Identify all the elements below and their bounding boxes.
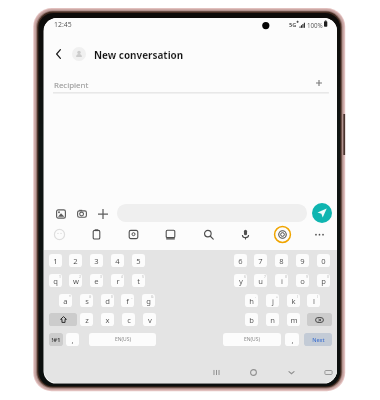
staticText: 5	[142, 274, 144, 279]
button[interactable]: Settings	[273, 225, 291, 243]
button[interactable]: Recents	[207, 363, 225, 381]
button[interactable]: 5	[132, 274, 145, 287]
button[interactable]: b	[245, 313, 258, 326]
button[interactable]: _	[121, 294, 134, 307]
button[interactable]: !#1	[49, 333, 63, 346]
button[interactable]: m	[287, 313, 300, 326]
button[interactable]: 7	[254, 254, 267, 267]
button[interactable]: n	[266, 313, 279, 326]
button[interactable]: Clipboard	[87, 225, 105, 243]
staticText: #	[89, 294, 92, 299]
button[interactable]: (	[287, 294, 300, 307]
button[interactable]: Back	[282, 363, 300, 381]
staticText: 9	[306, 274, 308, 279]
button[interactable]: Add recipient	[310, 74, 328, 92]
button[interactable]: Attach image	[52, 205, 70, 223]
button[interactable]: EN(US)	[89, 333, 156, 346]
staticText: y	[239, 276, 243, 286]
staticText: j	[272, 296, 274, 306]
button[interactable]: 8	[275, 274, 288, 287]
staticText: &	[151, 294, 154, 299]
staticText: x	[105, 315, 110, 325]
staticText: 2	[73, 256, 78, 266]
staticText: -	[255, 294, 257, 299]
button[interactable]: ,	[66, 333, 79, 346]
button[interactable]: GIF	[161, 225, 179, 243]
button[interactable]: Back	[48, 44, 68, 64]
button[interactable]: 5	[132, 254, 145, 267]
button[interactable]: 6	[234, 274, 247, 287]
staticText: b	[249, 315, 254, 325]
button[interactable]: Backspace	[307, 313, 332, 326]
button[interactable]: More attachments	[94, 205, 112, 223]
button[interactable]: Contact avatar	[72, 47, 86, 61]
button[interactable]: 3	[90, 254, 103, 267]
staticText: u	[258, 276, 263, 286]
button[interactable]: Home	[244, 363, 262, 381]
staticText: 4	[121, 274, 123, 279]
staticText: i	[281, 276, 283, 286]
staticText: w	[73, 276, 79, 286]
staticText: +	[276, 294, 278, 299]
staticText: ,	[291, 335, 294, 345]
button[interactable]: 1	[49, 254, 62, 267]
button[interactable]: 6	[234, 254, 247, 267]
staticText: m	[290, 315, 298, 325]
button[interactable]: 4	[111, 254, 124, 267]
button[interactable]: Voice input	[236, 225, 254, 243]
button[interactable]: ,	[285, 333, 299, 346]
button[interactable]: +	[266, 294, 279, 307]
staticText: o	[300, 276, 305, 286]
button[interactable]: EN(US)	[223, 333, 281, 346]
button[interactable]: Search	[199, 225, 217, 243]
button[interactable]: z	[80, 313, 93, 326]
staticText: l	[313, 296, 315, 306]
staticText: 9	[300, 256, 305, 266]
button[interactable]: 0	[317, 254, 330, 267]
button[interactable]: #	[80, 294, 93, 307]
button[interactable]: v	[143, 313, 156, 326]
button[interactable]: 1	[49, 274, 62, 287]
staticText: 8	[279, 256, 284, 266]
button[interactable]: x	[101, 313, 114, 326]
staticText: Recipient	[54, 80, 89, 91]
button[interactable]: Emoji	[50, 225, 68, 243]
staticText: n	[270, 315, 275, 325]
staticText: EN(US)	[115, 336, 131, 343]
staticText: k	[291, 296, 296, 306]
button[interactable]: Next	[304, 333, 332, 346]
button[interactable]: Camera	[73, 205, 91, 223]
button[interactable]: More	[310, 225, 328, 243]
staticText: 7	[264, 274, 266, 279]
staticText: d	[105, 296, 110, 306]
staticText: 5	[136, 256, 141, 266]
button[interactable]: *	[59, 294, 72, 307]
button[interactable]: 8	[275, 254, 288, 267]
button[interactable]: Stickers	[124, 225, 142, 243]
staticText: 12:45	[54, 20, 72, 29]
staticText: g	[146, 296, 151, 306]
button[interactable]: 7	[254, 274, 267, 287]
staticText: !#1	[51, 336, 61, 344]
button[interactable]: 2	[69, 254, 82, 267]
staticText: (	[297, 294, 299, 299]
button[interactable]: 9	[296, 254, 309, 267]
button[interactable]: &	[142, 294, 155, 307]
button[interactable]: 0	[317, 274, 330, 287]
staticText: )	[317, 294, 319, 299]
button[interactable]: Shift	[49, 313, 77, 326]
button[interactable]: Hide keyboard	[319, 363, 337, 381]
button[interactable]: 3	[90, 274, 103, 287]
button[interactable]: $	[101, 294, 114, 307]
button[interactable]: Send	[312, 203, 332, 223]
staticText: 7	[258, 256, 263, 266]
button[interactable]: 9	[296, 274, 309, 287]
staticText: 6	[238, 256, 243, 266]
button[interactable]: c	[122, 313, 135, 326]
button[interactable]: 4	[111, 274, 124, 287]
staticText: 3	[94, 256, 99, 266]
button[interactable]: -	[245, 294, 258, 307]
button[interactable]: )	[307, 294, 320, 307]
button[interactable]: 2	[69, 274, 82, 287]
